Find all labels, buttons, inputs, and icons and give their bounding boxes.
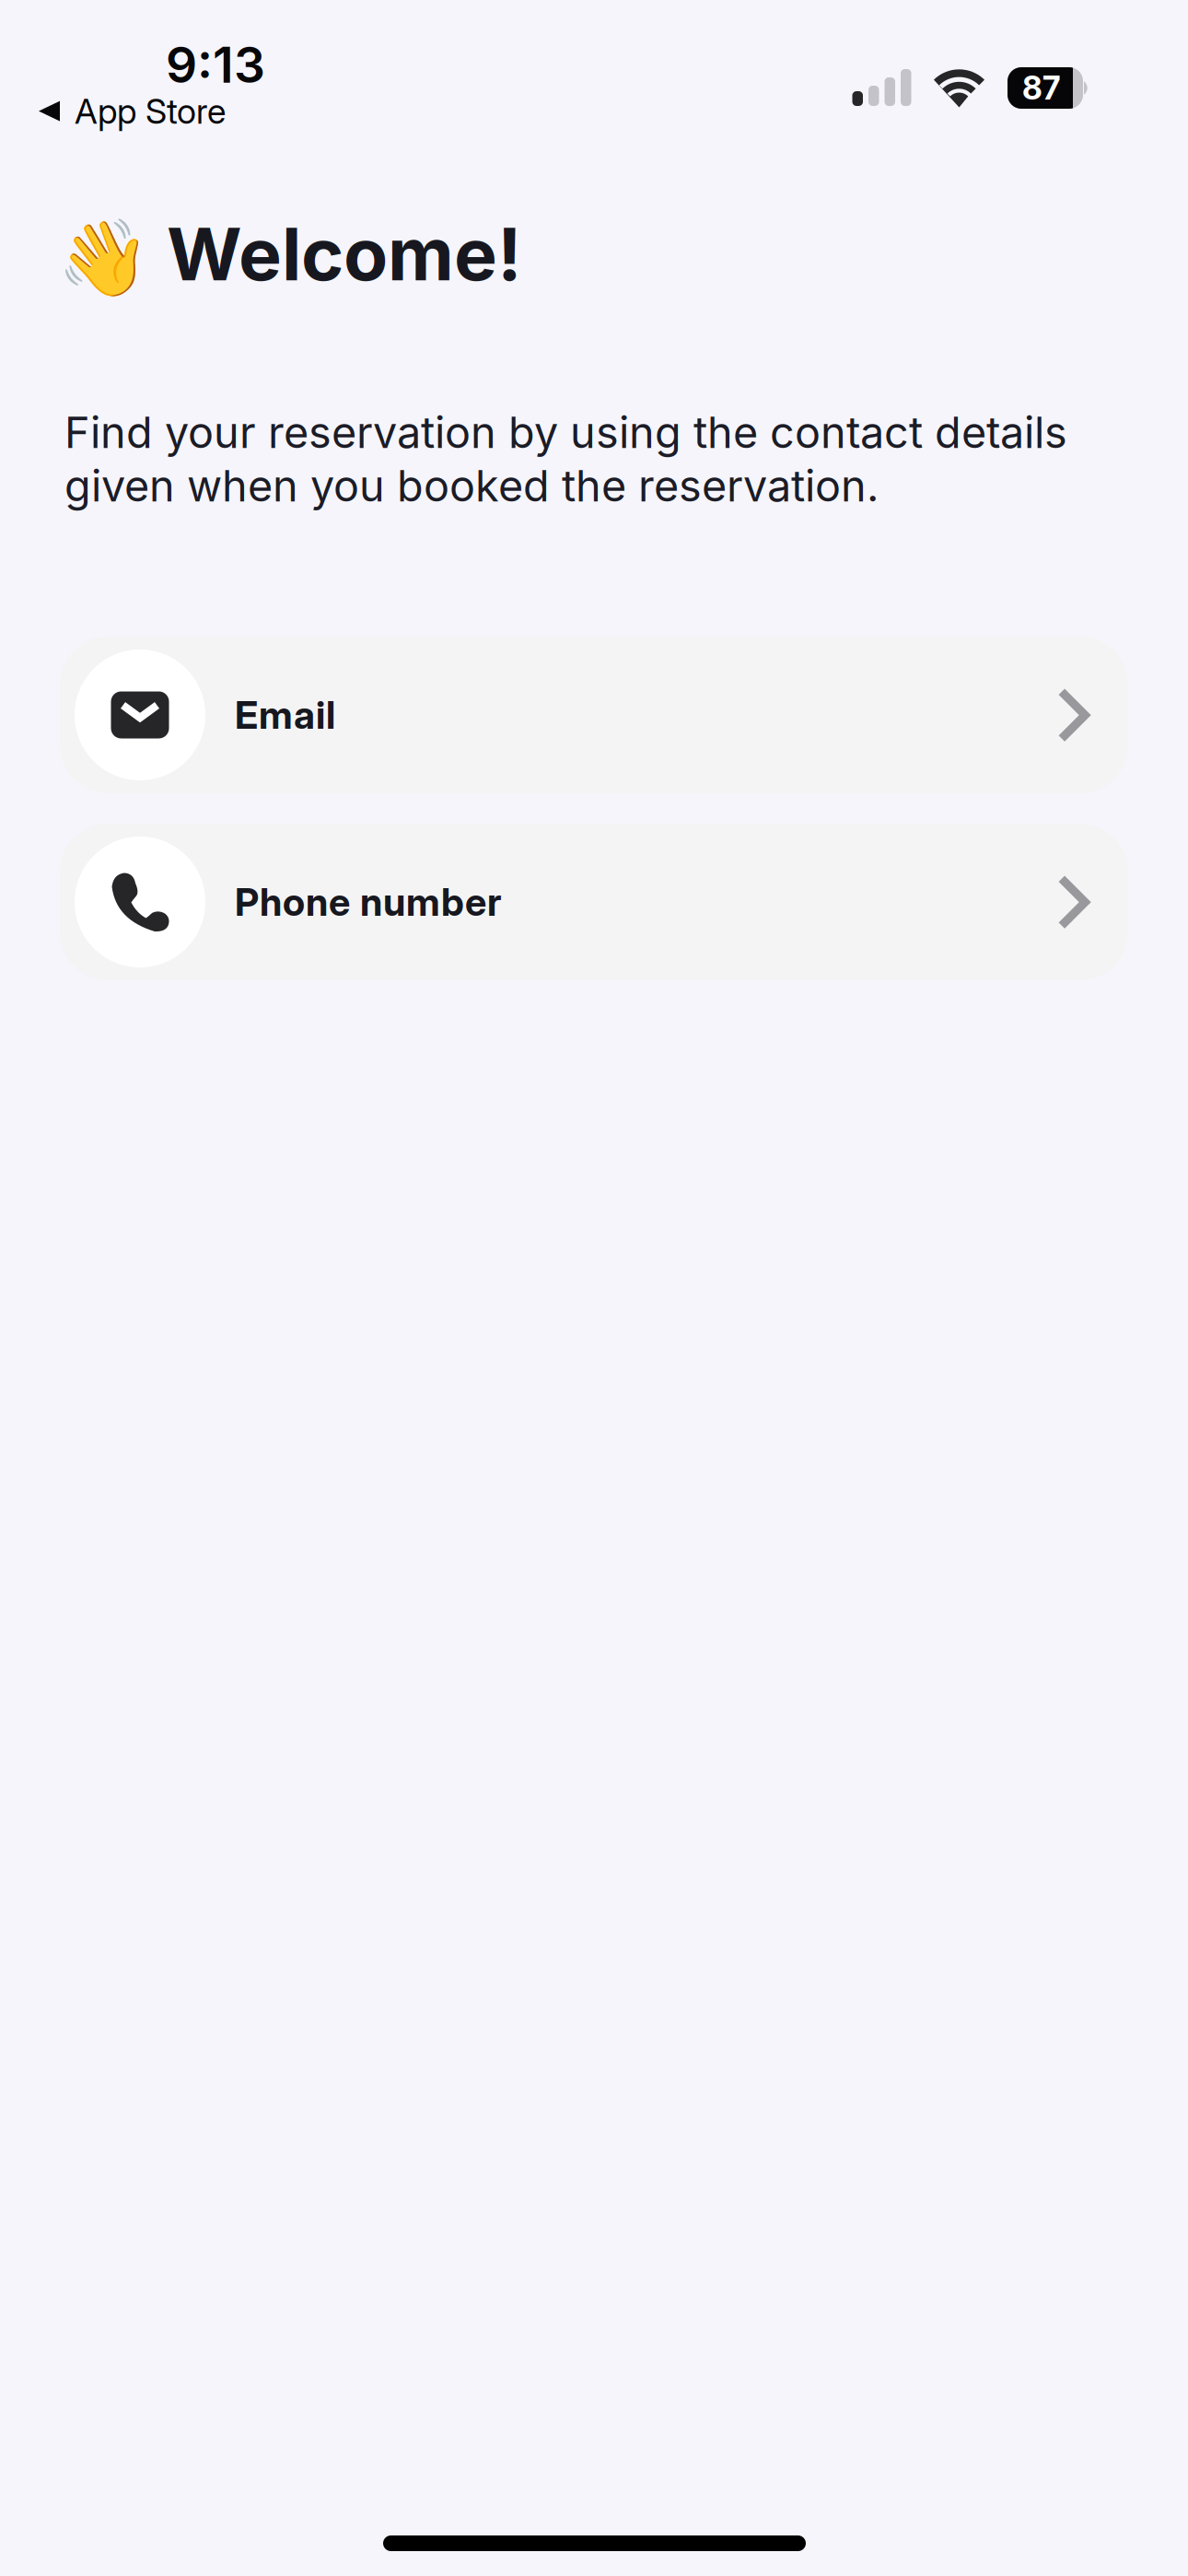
- button[interactable]: Email: [60, 637, 1128, 793]
- staticText: 87: [1022, 69, 1060, 107]
- staticText: given when you booked the reservation.: [64, 460, 879, 512]
- staticText: Find your reservation by using the conta…: [64, 406, 1067, 458]
- staticText: 👋: [57, 215, 150, 302]
- staticText: Phone number: [235, 879, 502, 925]
- staticText: Email: [235, 692, 335, 738]
- button[interactable]: Back to App Store: [38, 90, 226, 132]
- button[interactable]: Phone number: [60, 824, 1128, 980]
- staticText: App Store: [75, 90, 226, 132]
- staticText: 9:13: [166, 35, 265, 94]
- staticText: Welcome!: [167, 210, 522, 298]
